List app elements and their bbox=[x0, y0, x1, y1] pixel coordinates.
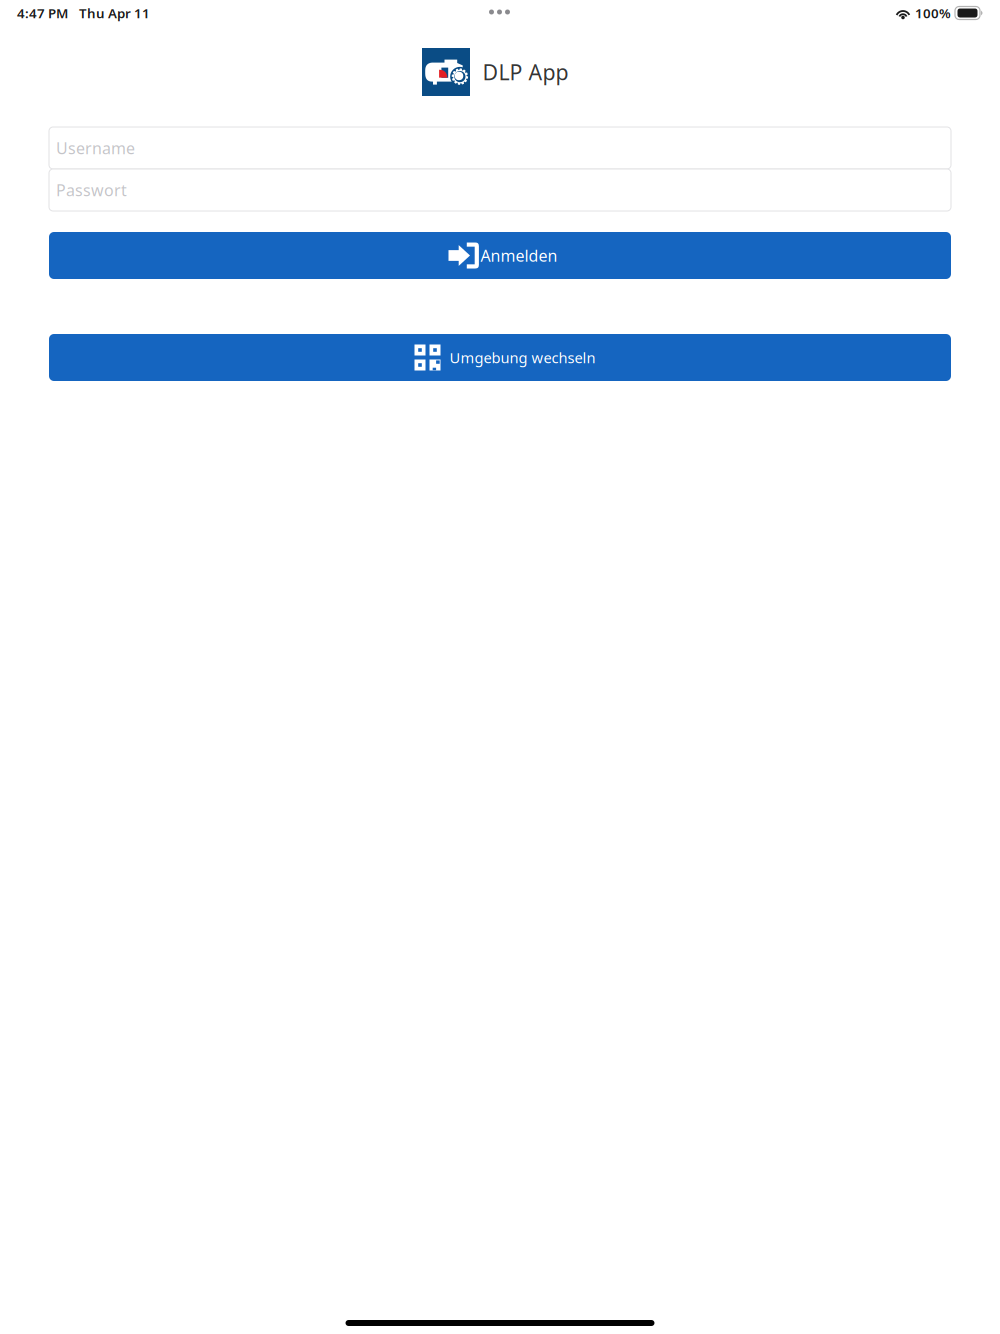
button[interactable]: Anmelden bbox=[49, 232, 951, 279]
staticText: Umgebung wechseln bbox=[449, 348, 595, 367]
button[interactable]: Username bbox=[49, 127, 951, 169]
textField[interactable]: Username bbox=[49, 127, 951, 169]
secureTextField[interactable]: Passwort bbox=[49, 169, 951, 211]
staticText: Passwort bbox=[56, 179, 127, 201]
staticText: 4:47 PM bbox=[17, 4, 68, 22]
staticText: DLP App bbox=[482, 58, 568, 86]
staticText: 100% bbox=[915, 4, 951, 22]
button[interactable]: Umgebung wechseln bbox=[49, 334, 951, 381]
staticText: Username bbox=[56, 137, 135, 159]
staticText: Anmelden bbox=[480, 245, 557, 266]
staticText: Thu Apr 11 bbox=[79, 4, 150, 22]
button[interactable]: Passwort bbox=[49, 169, 951, 211]
